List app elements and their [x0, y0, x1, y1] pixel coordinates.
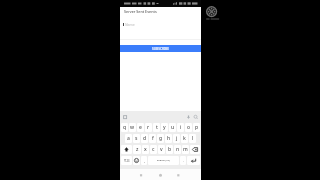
staticText: SUBSCRIBE [152, 47, 169, 51]
staticText: t [156, 124, 158, 131]
button[interactable]: v [158, 145, 165, 154]
button[interactable]: p [193, 123, 200, 132]
button[interactable]: b [166, 145, 173, 154]
staticText: m [183, 146, 188, 153]
button[interactable]: f [149, 134, 156, 143]
button[interactable]: English (US) [148, 156, 179, 165]
button[interactable]: l [189, 134, 196, 143]
button[interactable]: Emoji [133, 156, 140, 165]
staticText: English (US) [157, 159, 170, 162]
button[interactable]: i [177, 123, 184, 132]
staticText: q [123, 124, 127, 131]
staticText: k [183, 135, 186, 142]
staticText: f [152, 135, 154, 142]
button[interactable]: t [153, 123, 160, 132]
staticText: s [135, 135, 138, 142]
button[interactable]: d [141, 134, 148, 143]
staticText: b [168, 146, 172, 153]
button[interactable]: ?123 [121, 156, 132, 165]
button[interactable]: y [161, 123, 168, 132]
other: Logo [206, 4, 232, 22]
button[interactable]: m [182, 145, 189, 154]
button[interactable]: . [180, 156, 186, 165]
staticText: u [171, 124, 175, 131]
staticText: a [127, 135, 130, 142]
staticText: o [187, 124, 191, 131]
staticText: n [176, 146, 180, 153]
button[interactable]: e [137, 123, 144, 132]
staticText: x [144, 146, 147, 153]
button[interactable]: g [157, 134, 164, 143]
staticText: l [192, 135, 194, 142]
button[interactable]: r [145, 123, 152, 132]
staticText: Name [125, 22, 135, 27]
staticText: z [136, 146, 139, 153]
button[interactable]: z [133, 145, 141, 154]
staticText: y [163, 124, 166, 131]
staticText: Server Sent Events [124, 9, 157, 14]
button[interactable]: Backspace [190, 145, 200, 154]
button[interactable]: , [141, 156, 147, 165]
button[interactable]: c [150, 145, 157, 154]
staticText: e [139, 124, 142, 131]
staticText: w [130, 124, 135, 131]
button[interactable]: a [125, 134, 132, 143]
button[interactable]: SUBSCRIBE [120, 45, 201, 52]
staticText: , [144, 158, 145, 163]
button[interactable]: x [142, 145, 149, 154]
button[interactable]: h [165, 134, 172, 143]
staticText: j [176, 135, 178, 142]
button[interactable]: n [174, 145, 181, 154]
staticText: i [180, 124, 182, 131]
staticText: g [159, 135, 163, 142]
button[interactable]: o [185, 123, 192, 132]
button[interactable]: q [121, 123, 128, 132]
staticText: h [167, 135, 171, 142]
staticText: p [195, 124, 199, 131]
staticText: ?123 [124, 159, 130, 162]
staticText: d [143, 135, 147, 142]
button[interactable]: j [173, 134, 180, 143]
button[interactable]: Enter [187, 156, 200, 165]
button[interactable]: u [169, 123, 176, 132]
button[interactable]: Shift [121, 145, 132, 154]
button[interactable]: s [133, 134, 140, 143]
staticText: c [152, 146, 155, 153]
button[interactable]: k [181, 134, 188, 143]
staticText: . [183, 158, 184, 163]
button[interactable]: w [129, 123, 136, 132]
staticText: r [147, 124, 150, 131]
staticText: v [160, 146, 163, 153]
